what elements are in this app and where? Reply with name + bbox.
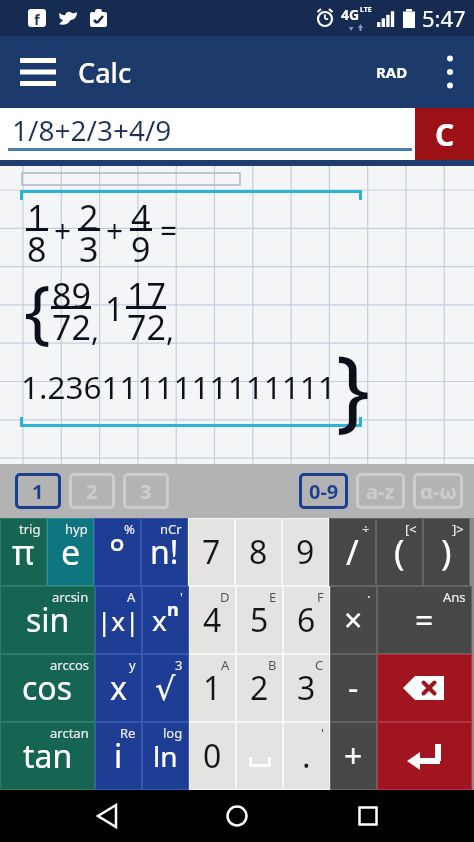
staticText: ln (153, 737, 178, 775)
staticText: 1 (27, 194, 47, 240)
staticText: i (114, 734, 123, 778)
button[interactable]: F (284, 587, 329, 653)
staticText: Re (120, 724, 136, 742)
staticText: ÷ (362, 520, 370, 538)
staticText: C (435, 114, 455, 155)
staticText: 8 (249, 530, 268, 574)
staticText: log (163, 724, 183, 742)
button[interactable]: arccos (1, 655, 94, 721)
staticText: |x| (97, 603, 140, 638)
staticText: D (220, 588, 230, 606)
staticText: 1 (203, 666, 222, 710)
staticText: ]> (452, 520, 464, 538)
button[interactable]: ' (284, 723, 329, 789)
staticText: A (127, 588, 136, 606)
staticText: 1 (32, 478, 44, 505)
button[interactable]: 0 (190, 723, 235, 789)
staticText: π (12, 529, 35, 575)
staticText: sin (26, 598, 70, 642)
button[interactable]: D (190, 587, 235, 653)
staticText: + (54, 210, 72, 251)
button[interactable]: 7 (189, 519, 234, 585)
staticText: B (268, 656, 277, 674)
button[interactable] (237, 723, 282, 789)
staticText: [< (405, 520, 417, 538)
button[interactable]: 1 (15, 473, 61, 509)
staticText: tan (23, 734, 73, 778)
button[interactable] (430, 36, 470, 108)
staticText: E (269, 588, 277, 606)
button[interactable] (378, 723, 471, 789)
button[interactable]: arctan (1, 723, 94, 789)
staticText: RAD (376, 62, 408, 82)
button[interactable] (83, 792, 131, 840)
staticText: 5 (250, 598, 269, 642)
button[interactable] (0, 36, 76, 108)
staticText: 72 (52, 304, 91, 350)
staticText: / (346, 529, 359, 575)
button[interactable]: C (284, 655, 329, 721)
button[interactable]: hyp (48, 519, 93, 585)
button[interactable]: ÷ (330, 519, 375, 585)
button[interactable]: y (96, 655, 141, 721)
button[interactable] (378, 655, 471, 721)
staticText: a-z (366, 478, 395, 505)
button[interactable]: nCr (142, 519, 187, 585)
button[interactable]: ' (143, 587, 188, 653)
button[interactable]: a-z (356, 473, 405, 509)
button[interactable]: - (331, 655, 376, 721)
button[interactable]: B (237, 655, 282, 721)
staticText: 0 (203, 734, 222, 778)
button[interactable]: A (96, 587, 141, 653)
button[interactable]: RAD (368, 54, 416, 90)
staticText: 5:47 (422, 3, 466, 33)
staticText: √ (155, 670, 176, 707)
staticText: x (152, 601, 167, 639)
button[interactable]: trig (1, 519, 46, 585)
staticText: 8 (27, 226, 47, 272)
staticText: Ans (443, 588, 466, 606)
button[interactable]: + (331, 723, 376, 789)
staticText: f (34, 9, 40, 27)
staticText: ( (394, 528, 405, 576)
button[interactable]: Ans (378, 587, 471, 653)
button[interactable]: % (95, 519, 140, 585)
staticText: n! (150, 530, 179, 574)
staticText: 3 (79, 226, 99, 272)
staticText: = (160, 210, 178, 251)
button[interactable] (213, 792, 261, 840)
staticText: = (415, 598, 434, 642)
button[interactable]: 3 (143, 655, 188, 721)
button[interactable]: A (190, 655, 235, 721)
button[interactable]: Re (96, 723, 141, 789)
button[interactable]: · (331, 587, 376, 653)
staticText: 3 (140, 478, 152, 505)
button[interactable]: α-ω (413, 473, 463, 509)
button[interactable]: [< (377, 519, 422, 585)
button[interactable]: C (415, 108, 474, 160)
staticText: y (129, 656, 136, 674)
staticText: + (344, 734, 363, 778)
button[interactable]: ]> (424, 519, 469, 585)
button[interactable]: 8 (236, 519, 281, 585)
staticText: F (317, 588, 324, 606)
staticText: 17 (127, 272, 166, 318)
button[interactable]: 9 (283, 519, 328, 585)
staticText: · (367, 588, 371, 606)
staticText: 72 (127, 304, 166, 350)
staticText: 2 (86, 478, 98, 505)
staticText: 4 (203, 598, 222, 642)
button[interactable]: 3 (123, 473, 169, 509)
staticText: 1 (105, 286, 124, 331)
button[interactable]: E (237, 587, 282, 653)
staticText: ° (109, 526, 126, 578)
button[interactable]: log (143, 723, 188, 789)
button[interactable]: 2 (69, 473, 115, 509)
staticText: arcsin (52, 588, 89, 606)
button[interactable]: 0-9 (299, 473, 348, 509)
staticText: ' (180, 588, 183, 606)
button[interactable] (344, 792, 392, 840)
staticText: 4 (131, 194, 151, 240)
button[interactable]: arcsin (1, 587, 94, 653)
staticText: LTE (360, 5, 372, 15)
